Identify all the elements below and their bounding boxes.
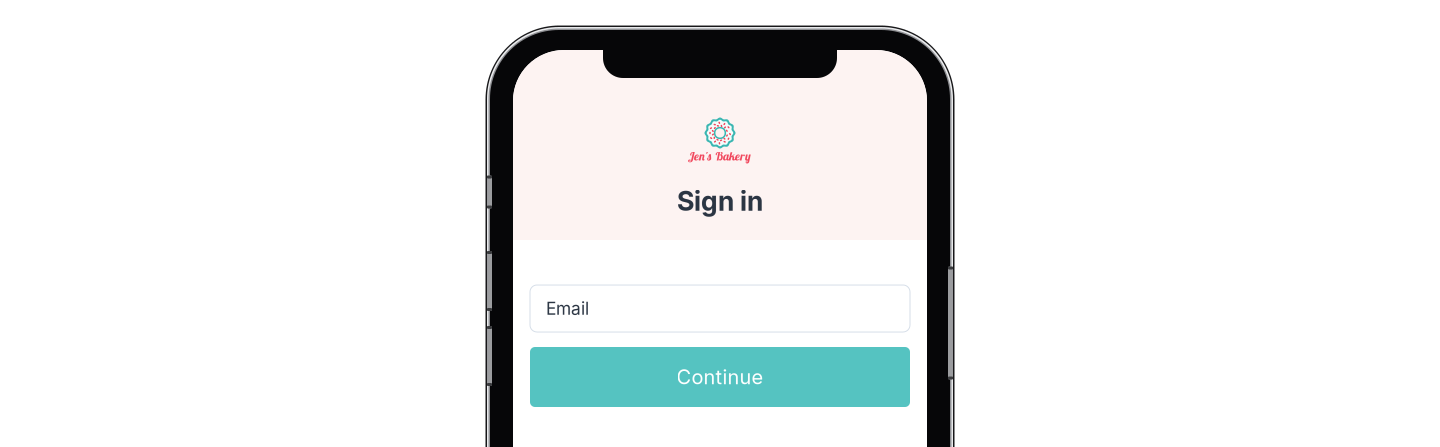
staticText: Continue bbox=[676, 365, 763, 389]
button[interactable]: Continue bbox=[530, 347, 910, 407]
staticText: Jen's Bakery bbox=[689, 148, 751, 163]
staticText: Sign in bbox=[677, 185, 763, 217]
staticText: Email bbox=[546, 298, 589, 319]
button[interactable]: Email bbox=[530, 285, 910, 332]
